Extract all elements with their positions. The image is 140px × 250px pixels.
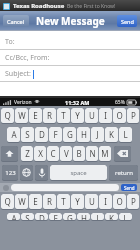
staticText: W [18,196,26,207]
staticText: Send [124,185,135,191]
staticText: H [81,213,87,220]
button[interactable]: S [21,127,34,142]
button[interactable]: T [57,108,70,123]
button[interactable]: D [35,127,48,142]
staticText: O [116,110,123,121]
staticText: F [53,129,58,140]
staticText: E [33,110,38,121]
staticText: J [96,129,99,140]
staticText: E [33,196,38,207]
button[interactable]: O [113,108,126,123]
button[interactable]: M [99,146,111,161]
staticText: To: [5,37,15,47]
button[interactable]: Q [1,194,14,209]
button[interactable]: H [77,213,90,220]
staticText: P [131,196,136,207]
staticText: A [11,129,17,140]
staticText: Texas Roadhouse [13,2,65,10]
button[interactable]: D [35,213,48,220]
button[interactable]: O [113,194,126,209]
other: App icon [3,3,10,10]
button[interactable]: G [63,213,76,220]
button[interactable]: A [7,213,20,220]
staticText: M [101,148,109,159]
button[interactable]: P [127,194,139,209]
button[interactable]: Dictation [35,165,48,180]
staticText: K [109,129,114,140]
button[interactable]: R [43,194,56,209]
button[interactable]: V [60,146,72,161]
button[interactable]: E [29,194,42,209]
staticText: I [104,110,107,121]
button[interactable]: P [127,108,139,123]
button[interactable]: Switch keyboard [20,165,33,180]
button[interactable]: X [34,146,46,161]
button[interactable]: E [29,108,42,123]
button[interactable]: return [109,165,138,180]
button[interactable]: W [15,194,28,209]
button[interactable]: Subject: [5,66,140,81]
button[interactable]: Cc/Bcc, From: [5,50,140,65]
staticText: 123 [5,169,16,177]
button[interactable]: F [49,213,62,220]
button[interactable]: G [63,127,76,142]
button[interactable]: L [119,127,132,142]
staticText: L [123,213,128,220]
button[interactable] [11,184,119,191]
button[interactable]: B [73,146,85,161]
button[interactable]: space [50,165,107,180]
staticText: R [47,196,52,207]
button[interactable]: Cancel [3,15,29,27]
staticText: Q [4,196,11,207]
button[interactable]: C [47,146,59,161]
staticText: L [123,129,128,140]
button[interactable]: Q [1,108,14,123]
button[interactable]: Z [21,146,33,161]
button[interactable]: U [85,108,98,123]
staticText: T [61,196,66,207]
button[interactable]: J [91,127,104,142]
staticText: O [116,196,123,207]
staticText: I [104,196,107,207]
button[interactable]: U [85,194,98,209]
button[interactable]: Shift [1,146,18,161]
staticText: A [11,213,17,220]
button[interactable]: S [21,213,34,220]
button[interactable]: J [91,213,104,220]
button[interactable]: I [99,108,112,123]
button[interactable]: R [43,108,56,123]
staticText: W [18,110,26,121]
staticText: X [38,148,43,159]
staticText: J [96,213,99,220]
button[interactable]: Camera [3,185,9,191]
button[interactable]: T [57,194,70,209]
staticText: B [76,148,82,159]
button[interactable]: Backspace [114,146,131,161]
button[interactable]: K [105,127,118,142]
button[interactable]: To: [5,34,140,49]
staticText: Cc/Bcc, From: [5,53,50,63]
staticText: Subject: [5,69,31,79]
button[interactable]: App icon [0,0,140,11]
staticText: H [81,129,87,140]
button[interactable]: Send [117,15,137,27]
button[interactable]: Send [121,184,137,191]
button[interactable]: Y [71,108,84,123]
button[interactable]: N [86,146,98,161]
staticText: G [67,213,73,220]
button[interactable]: F [49,127,62,142]
staticText: Be the First to Know! [67,3,116,10]
staticText: G [67,129,73,140]
staticText: K [109,213,114,220]
button[interactable]: 123 [2,165,18,180]
button[interactable]: H [77,127,90,142]
staticText: Z [25,148,30,159]
button[interactable]: I [99,194,112,209]
button[interactable]: Y [71,194,84,209]
button[interactable]: K [105,213,118,220]
button[interactable]: L [119,213,132,220]
staticText: Cancel [7,18,25,25]
button[interactable]: A [7,127,20,142]
button[interactable]: W [15,108,28,123]
